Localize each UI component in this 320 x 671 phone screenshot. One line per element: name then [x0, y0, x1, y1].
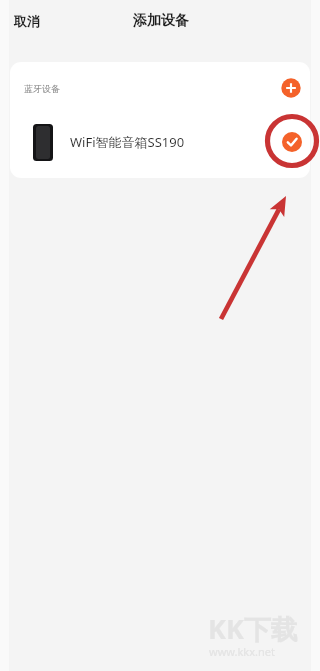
staticText: KK下载 [208, 610, 298, 647]
button[interactable]: WiFi智能音箱SS190 [10, 116, 310, 168]
button[interactable]: 已选中 [281, 131, 303, 153]
staticText: www.kkx.net [209, 644, 275, 659]
staticText: 添加设备 [133, 12, 189, 30]
button[interactable]: 添加设备 [280, 77, 302, 99]
staticText: 蓝牙设备 [24, 83, 60, 94]
staticText: 取消 [14, 13, 40, 29]
staticText: WiFi智能音箱SS190 [70, 133, 185, 151]
button[interactable]: 取消 [6, 7, 62, 35]
